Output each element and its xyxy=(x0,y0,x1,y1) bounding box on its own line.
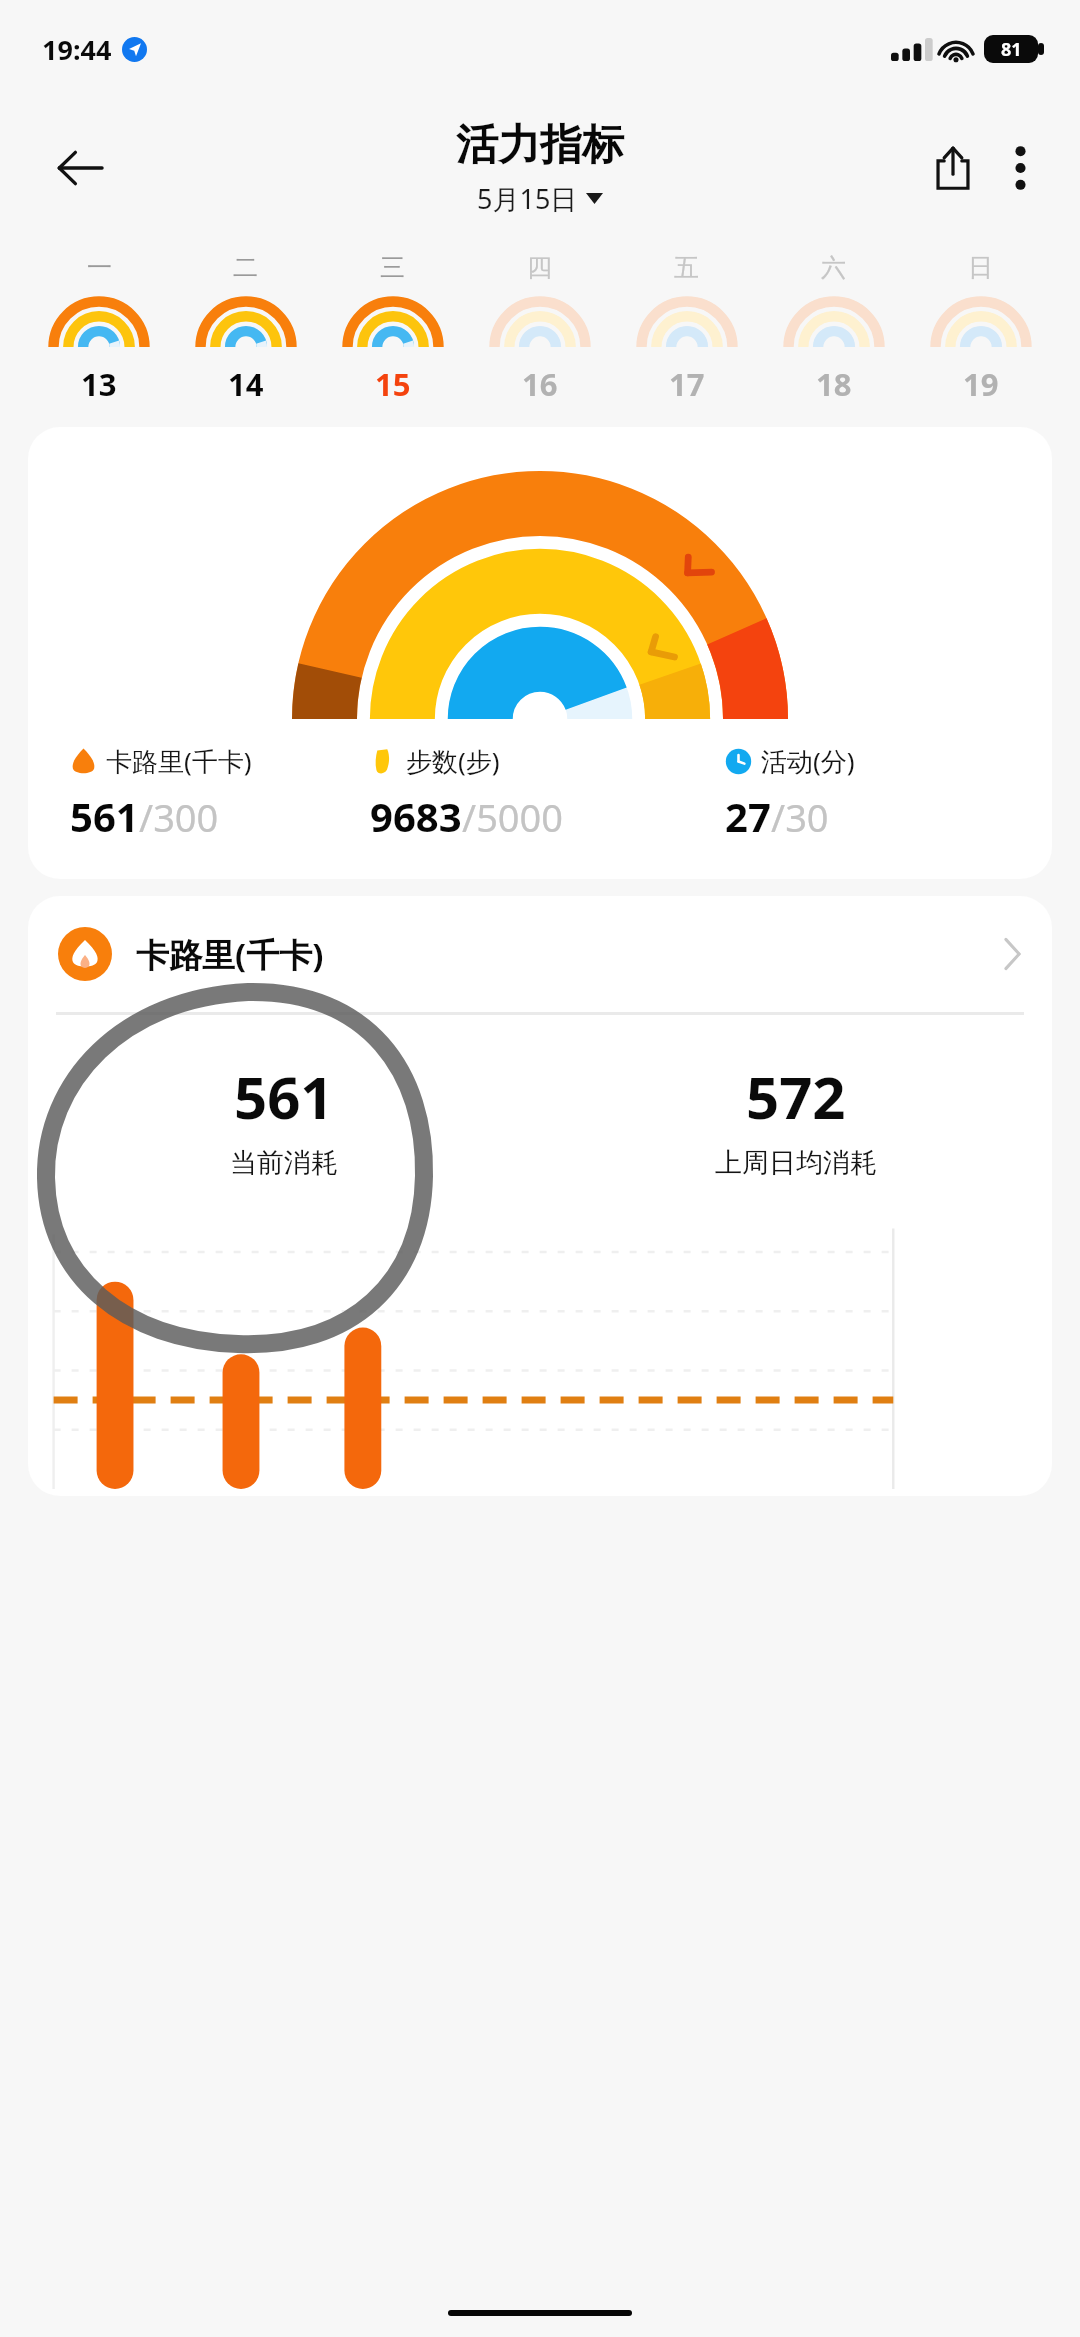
staticText: 19:44 xyxy=(42,31,112,68)
staticText: 15 xyxy=(375,363,411,405)
staticText: /300 xyxy=(139,791,219,843)
staticText: 当前消耗 xyxy=(230,1146,338,1180)
button[interactable]: 四 xyxy=(466,252,613,405)
button[interactable]: More options xyxy=(988,136,1052,200)
staticText: 9683 xyxy=(370,789,462,843)
button[interactable]: 二 xyxy=(172,252,319,405)
staticText: 四 xyxy=(527,252,552,283)
staticText: 卡路里(千卡) xyxy=(136,932,324,977)
staticText: 六 xyxy=(821,252,846,283)
staticText: 561 xyxy=(70,789,139,843)
staticText: 14 xyxy=(228,363,264,405)
button[interactable]: 卡路里(千卡) xyxy=(28,896,1052,1012)
staticText: 步数(步) xyxy=(406,743,500,779)
staticText: 27 xyxy=(725,789,771,843)
staticText: 13 xyxy=(81,363,117,405)
button[interactable]: 六 xyxy=(760,252,907,405)
staticText: 三 xyxy=(380,252,405,283)
staticText: 16 xyxy=(522,363,558,405)
button[interactable]: 卡路里(千卡) xyxy=(28,427,1052,879)
staticText: 572 xyxy=(746,1057,846,1136)
staticText: 19 xyxy=(963,363,999,405)
staticText: 17 xyxy=(669,363,705,405)
button[interactable]: 日 xyxy=(907,252,1054,405)
staticText: 上周日均消耗 xyxy=(715,1146,877,1180)
staticText: 五 xyxy=(674,252,699,283)
button[interactable]: 一 xyxy=(26,252,172,405)
staticText: 561 xyxy=(234,1057,334,1136)
staticText: 一 xyxy=(87,252,112,283)
button[interactable]: 五 xyxy=(613,252,760,405)
button[interactable]: Back xyxy=(46,134,114,202)
staticText: 18 xyxy=(816,363,852,405)
staticText: 5月15日 xyxy=(477,180,578,217)
staticText: 卡路里(千卡) xyxy=(106,743,252,779)
staticText: 活动(分) xyxy=(761,743,855,779)
staticText: /5000 xyxy=(462,791,564,843)
staticText: 二 xyxy=(233,252,258,283)
staticText: 活力指标 xyxy=(456,119,624,172)
staticText: 日 xyxy=(968,252,993,283)
staticText: /30 xyxy=(771,791,829,843)
button[interactable]: Share xyxy=(918,133,988,203)
staticText: 81 xyxy=(1001,37,1022,62)
button[interactable]: 三 xyxy=(319,252,466,405)
button[interactable]: 活力指标 xyxy=(456,119,624,217)
